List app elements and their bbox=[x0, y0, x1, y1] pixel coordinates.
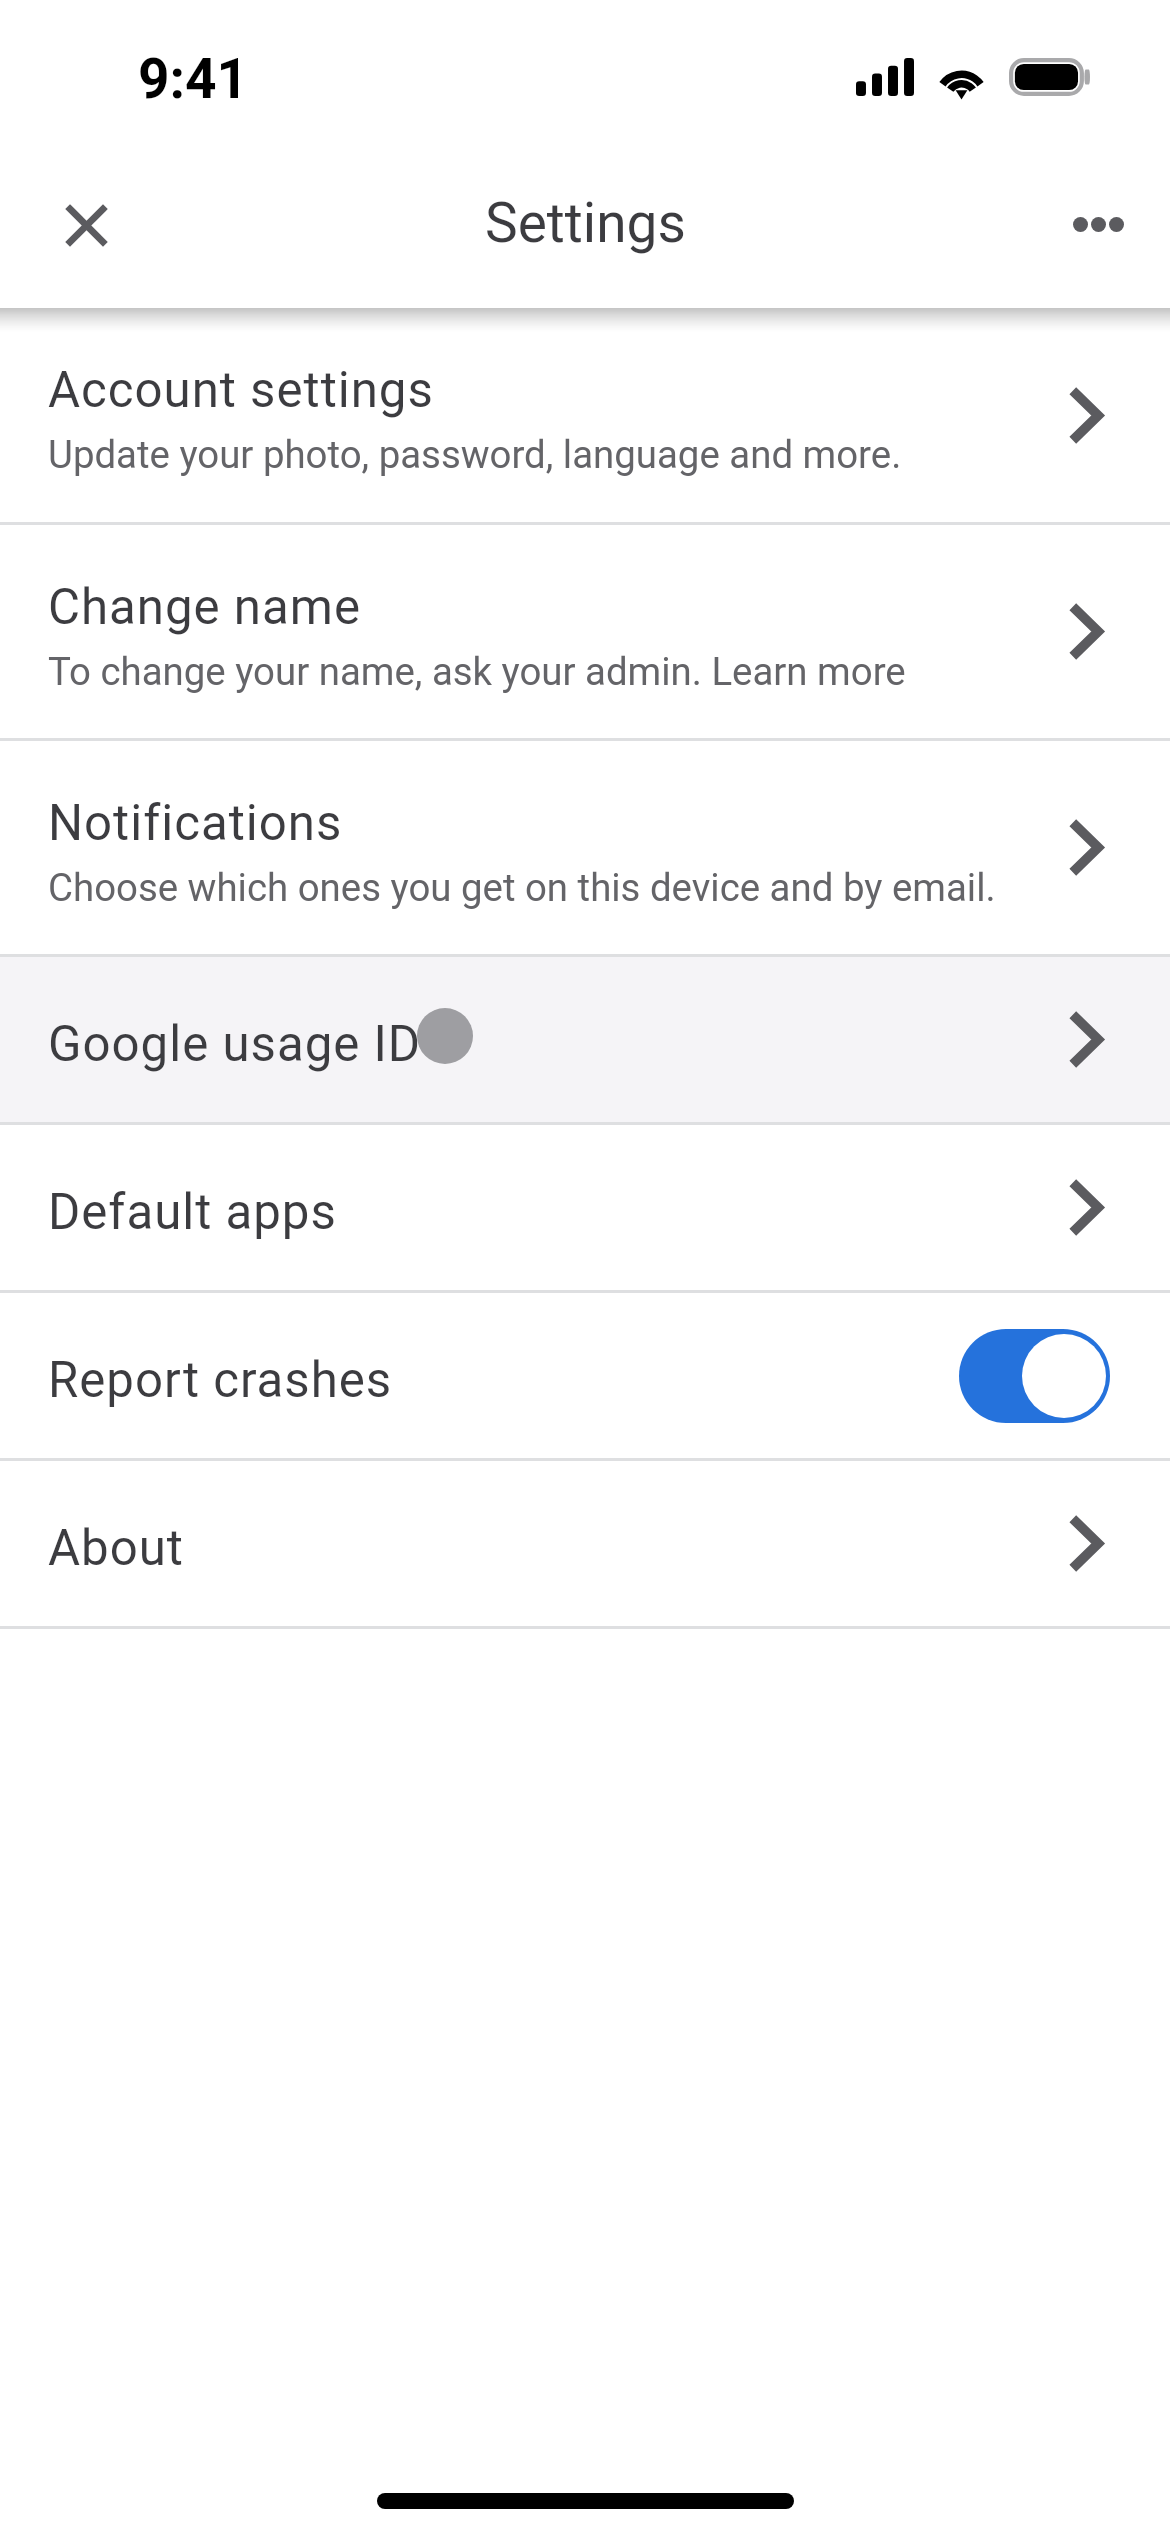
staticText: Google usage ID bbox=[48, 1015, 422, 1073]
button[interactable]: Change name bbox=[0, 525, 1170, 738]
staticText: Change name bbox=[48, 578, 361, 636]
staticText: 9:41 bbox=[138, 47, 249, 111]
staticText: Account settings bbox=[48, 361, 434, 419]
button[interactable]: About bbox=[0, 1461, 1170, 1626]
staticText: Settings bbox=[485, 191, 686, 255]
button[interactable]: Report crashes, on bbox=[959, 1329, 1110, 1423]
staticText: Notifications bbox=[48, 794, 343, 852]
button[interactable]: Notifications bbox=[0, 741, 1170, 954]
button[interactable]: Report crashes bbox=[0, 1293, 1170, 1458]
staticText: Report crashes bbox=[48, 1351, 959, 1409]
button[interactable]: Account settings bbox=[0, 308, 1170, 522]
staticText: About bbox=[48, 1519, 184, 1577]
button[interactable]: Google usage ID bbox=[0, 957, 1170, 1122]
staticText: Update your photo, password, language an… bbox=[48, 432, 902, 477]
button[interactable]: Default apps bbox=[0, 1125, 1170, 1290]
staticText: Choose which ones you get on this device… bbox=[48, 865, 996, 910]
staticText: To change your name, ask your admin. Lea… bbox=[48, 649, 906, 694]
button[interactable]: More options bbox=[1062, 188, 1134, 260]
staticText: Default apps bbox=[48, 1183, 337, 1241]
button[interactable]: Close bbox=[50, 189, 122, 261]
